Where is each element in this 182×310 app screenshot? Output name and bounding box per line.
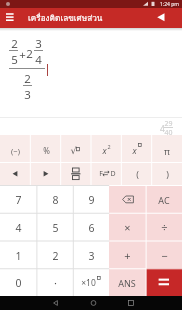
staticText: x (102, 145, 107, 157)
staticText: + (19, 47, 26, 59)
button[interactable] (91, 135, 121, 162)
staticText: 4 (15, 221, 22, 235)
button[interactable] (40, 296, 70, 310)
button[interactable] (0, 213, 36, 241)
staticText: 6 (88, 221, 95, 235)
button[interactable] (109, 241, 145, 269)
staticText: 2 (11, 36, 18, 49)
staticText: 3 (24, 87, 31, 100)
button[interactable] (109, 185, 145, 213)
staticText: 4 (35, 52, 42, 65)
button[interactable] (36, 241, 72, 269)
staticText: D (110, 169, 116, 179)
button[interactable] (73, 241, 109, 269)
button[interactable] (109, 268, 145, 296)
staticText: 9 (88, 193, 95, 207)
staticText: เครื่องคิดเลขเศษส่วน (28, 12, 103, 25)
button[interactable] (0, 185, 36, 213)
staticText: ( (136, 168, 139, 180)
button[interactable] (0, 8, 28, 28)
staticText: 5 (52, 221, 59, 235)
staticText: π (164, 145, 170, 157)
button[interactable] (36, 213, 72, 241)
staticText: ×10 (81, 277, 96, 289)
staticText: 2 (26, 46, 33, 58)
button[interactable] (146, 213, 182, 241)
staticText: 2 (24, 71, 31, 84)
staticText: − (161, 248, 168, 263)
staticText: 40 (164, 128, 173, 136)
staticText: × (124, 220, 131, 235)
button[interactable] (152, 135, 182, 162)
button[interactable] (91, 162, 121, 185)
button[interactable] (73, 213, 109, 241)
button[interactable] (36, 185, 72, 213)
staticText: 0 (15, 276, 22, 290)
button[interactable] (0, 162, 30, 185)
button[interactable] (0, 135, 30, 162)
staticText: 2 (107, 143, 111, 150)
staticText: ANS (118, 277, 136, 289)
staticText: % (43, 145, 50, 156)
button[interactable] (0, 268, 36, 296)
staticText: 2 (52, 249, 59, 263)
button[interactable] (36, 268, 72, 296)
button[interactable] (30, 135, 60, 162)
staticText: ) (166, 168, 169, 180)
staticText: 1 (15, 249, 22, 263)
staticText: + (124, 248, 131, 263)
button[interactable] (61, 135, 91, 162)
button[interactable] (146, 185, 182, 213)
staticText: √ (70, 145, 77, 156)
staticText: · (54, 275, 57, 290)
button[interactable] (121, 162, 151, 185)
button[interactable] (152, 162, 182, 185)
staticText: (−) (11, 146, 20, 156)
button[interactable] (30, 162, 60, 185)
staticText: 4 (160, 123, 165, 135)
button[interactable] (73, 268, 109, 296)
staticText: 7 (15, 193, 22, 207)
button[interactable] (73, 185, 109, 213)
button[interactable] (121, 135, 151, 162)
staticText: 3 (88, 249, 95, 263)
button[interactable] (61, 162, 91, 185)
button[interactable] (146, 241, 182, 269)
staticText: ÷ (161, 220, 168, 235)
button[interactable] (109, 213, 145, 241)
staticText: F (99, 169, 103, 179)
staticText: 29 (164, 119, 173, 127)
staticText: x (132, 145, 137, 157)
button[interactable] (114, 296, 144, 310)
staticText: 3 (35, 36, 42, 49)
staticText: 5 (11, 52, 18, 65)
staticText: 8 (52, 193, 59, 207)
button[interactable] (150, 8, 182, 28)
button[interactable] (0, 241, 36, 269)
staticText: AC (158, 194, 170, 206)
button[interactable] (79, 296, 109, 310)
button[interactable] (146, 268, 182, 296)
staticText: 1:24 pm (160, 1, 179, 8)
